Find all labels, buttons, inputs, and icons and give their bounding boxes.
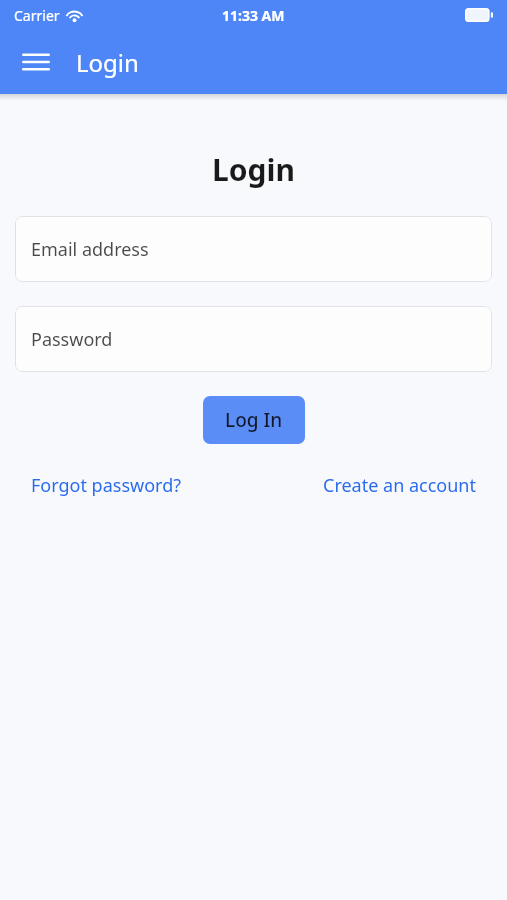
staticText: 11:33 AM	[222, 6, 285, 25]
button[interactable]: Log In	[203, 396, 305, 444]
button[interactable]: Password	[15, 306, 492, 372]
staticText: Password	[31, 327, 113, 352]
button[interactable]: Forgot password?	[17, 467, 196, 504]
staticText: Login	[15, 149, 492, 190]
button[interactable]: Open navigation menu	[10, 36, 62, 88]
button[interactable]: Email address	[15, 216, 492, 282]
staticText: Forgot password?	[31, 473, 182, 498]
staticText: Carrier	[14, 6, 60, 25]
staticText: Login	[76, 46, 139, 79]
staticText: Log In	[225, 407, 283, 433]
staticText: Email address	[31, 237, 149, 262]
button[interactable]: Create an account	[309, 467, 490, 504]
staticText: Create an account	[323, 473, 476, 498]
